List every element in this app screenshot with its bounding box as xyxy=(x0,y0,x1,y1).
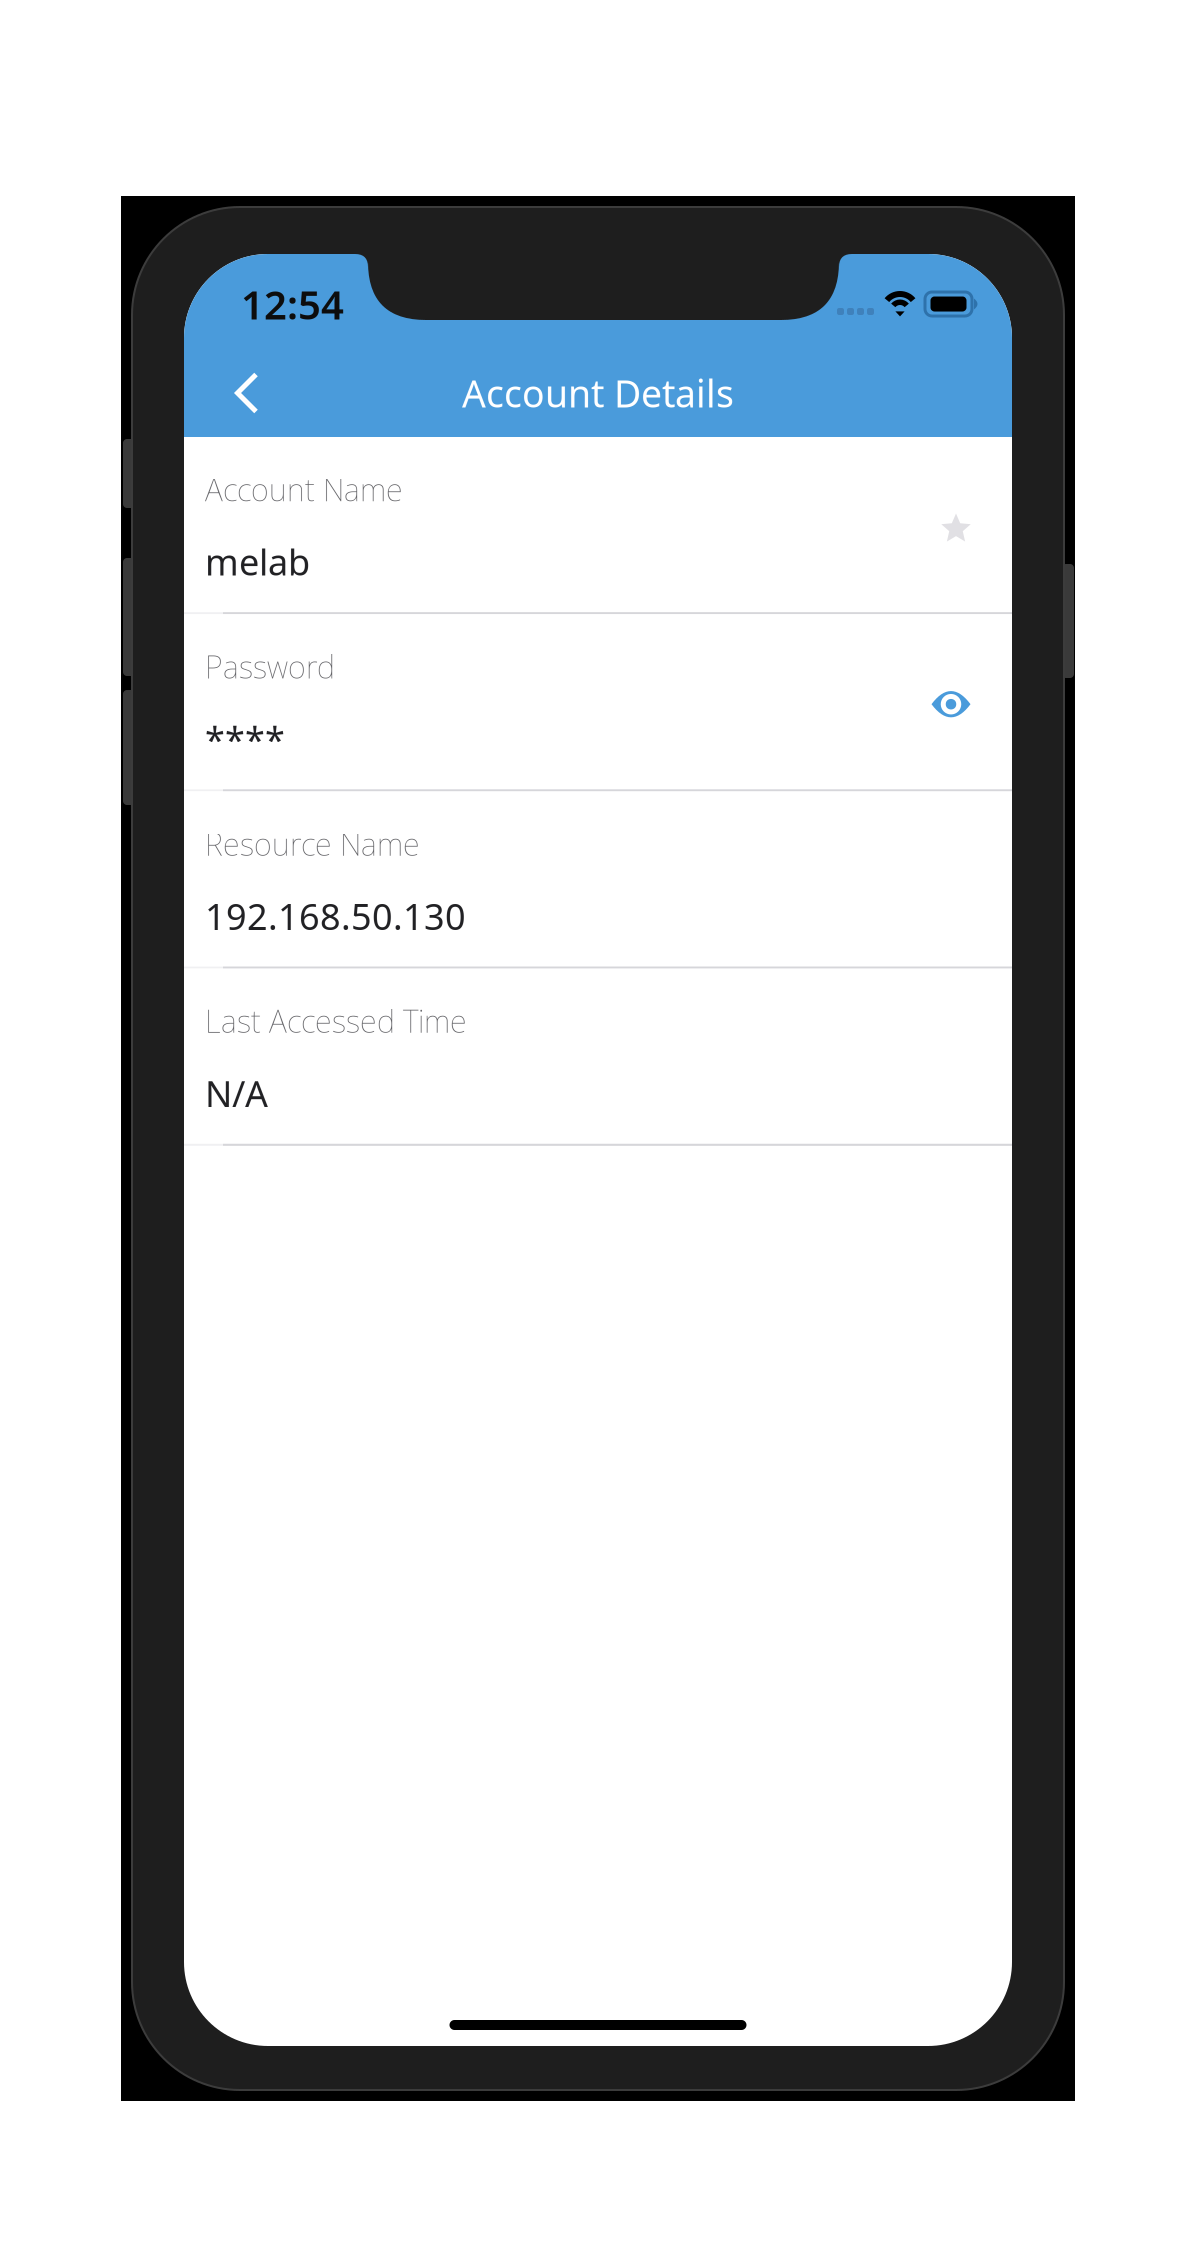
staticText: 12:54 xyxy=(241,277,344,330)
button[interactable]: Add to favorites xyxy=(919,492,993,566)
staticText: **** xyxy=(205,715,285,763)
staticText: Last Accessed Time xyxy=(205,1001,467,1041)
staticText: Resource Name xyxy=(205,823,420,864)
button[interactable]: Back xyxy=(204,350,290,436)
staticText: Account Name xyxy=(205,469,403,510)
staticText: Account Details xyxy=(462,368,734,418)
staticText: Password xyxy=(205,646,335,687)
staticText: melab xyxy=(205,538,310,585)
staticText: 192.168.50.130 xyxy=(205,892,466,940)
staticText: N/A xyxy=(205,1069,268,1117)
button[interactable]: Show password xyxy=(914,667,988,741)
